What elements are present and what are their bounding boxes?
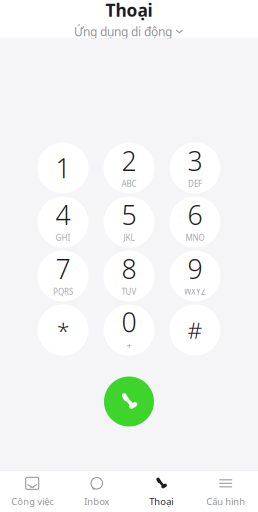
button[interactable]: 9 [169, 250, 220, 301]
staticText: Công việc [11, 495, 53, 508]
staticText: WXYZ [184, 286, 206, 297]
button[interactable]: Cấu hình [193, 471, 258, 512]
staticText: GHI [55, 232, 70, 243]
staticText: 1 [55, 150, 70, 186]
button[interactable]: 3 [169, 142, 220, 193]
button[interactable]: * [37, 304, 88, 355]
staticText: 4 [55, 197, 70, 232]
staticText: TUV [121, 286, 136, 297]
button[interactable]: 5 [103, 196, 154, 247]
button[interactable]: Call [104, 376, 154, 426]
staticText: Thoại [105, 0, 152, 21]
button[interactable]: 6 [169, 196, 220, 247]
button[interactable]: Công việc [0, 471, 64, 512]
staticText: 9 [187, 251, 202, 286]
staticText: Inbox [84, 495, 109, 508]
staticText: 0 [121, 304, 136, 339]
button[interactable]: 0 [103, 304, 154, 355]
staticText: * [57, 315, 69, 345]
staticText: 3 [187, 143, 202, 178]
staticText: 5 [121, 197, 136, 232]
staticText: 6 [187, 197, 202, 232]
staticText: 8 [121, 251, 136, 286]
staticText: 7 [55, 251, 70, 286]
button[interactable]: # [169, 304, 220, 355]
staticText: Thoại [149, 495, 173, 508]
staticText: 2 [121, 143, 136, 178]
button[interactable]: 8 [103, 250, 154, 301]
button[interactable]: 7 [37, 250, 88, 301]
staticText: ABC [121, 178, 136, 189]
button[interactable]: 2 [103, 142, 154, 193]
staticText: PQRS [53, 286, 73, 297]
staticText: Ứng dụng di động [74, 23, 172, 39]
button[interactable]: Thoại [129, 471, 193, 512]
staticText: JKL [123, 232, 134, 243]
staticText: Cấu hình [206, 495, 245, 508]
staticText: + [126, 339, 131, 352]
staticText: DEF [188, 178, 202, 189]
button[interactable]: 1 [37, 142, 88, 193]
staticText: MNO [185, 232, 204, 243]
button[interactable]: Inbox [64, 471, 129, 512]
staticText: # [187, 315, 202, 345]
button[interactable]: Ứng dụng di động [74, 23, 184, 39]
button[interactable]: 4 [37, 196, 88, 247]
